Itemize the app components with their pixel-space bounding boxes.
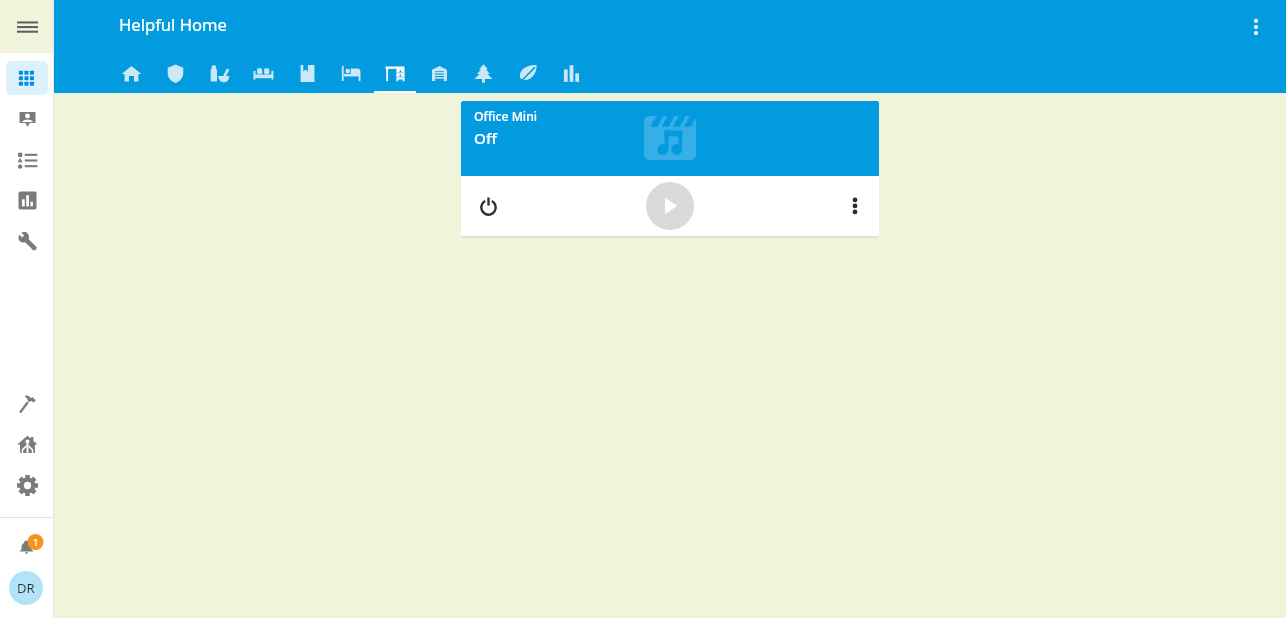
button[interactable]: Profile (9, 571, 43, 605)
button[interactable]: Tools (6, 224, 48, 258)
button[interactable]: More options (1236, 7, 1276, 47)
button[interactable]: Settings (6, 468, 48, 502)
button[interactable]: Home (6, 427, 48, 461)
button[interactable]: Map (6, 102, 48, 136)
button[interactable]: Menu (0, 0, 54, 53)
button[interactable]: Security (153, 53, 197, 93)
button[interactable]: Energy (505, 53, 549, 93)
button[interactable]: Bedroom (329, 53, 373, 93)
button[interactable]: More (835, 186, 875, 226)
button[interactable]: Living room (241, 53, 285, 93)
button[interactable]: Home (109, 53, 153, 93)
button[interactable]: Office (373, 53, 417, 93)
staticText: 1 (33, 536, 39, 549)
button[interactable]: Overview (6, 61, 48, 95)
button[interactable]: Notifications (6, 530, 48, 564)
button[interactable]: Statistics (549, 53, 593, 93)
button[interactable]: Outside (461, 53, 505, 93)
button[interactable]: Power (468, 186, 508, 226)
staticText: Helpful Home (119, 13, 227, 36)
button[interactable]: History (6, 183, 48, 217)
button[interactable]: Kitchen (197, 53, 241, 93)
staticText: DR (17, 579, 35, 597)
button[interactable]: Play (646, 182, 694, 230)
button[interactable]: Developer tools (6, 386, 48, 420)
staticText: Off (474, 128, 497, 149)
button[interactable]: Logbook (6, 143, 48, 177)
button[interactable]: Garage (417, 53, 461, 93)
button[interactable]: Library (285, 53, 329, 93)
staticText: Office Mini (474, 108, 538, 125)
